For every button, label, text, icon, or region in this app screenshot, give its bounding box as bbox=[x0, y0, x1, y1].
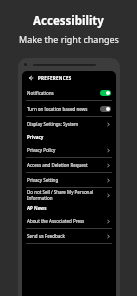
button[interactable]: Privacy Policy bbox=[22, 143, 116, 157]
other: Back bbox=[27, 74, 35, 82]
button[interactable]: Turn on location based news bbox=[22, 101, 116, 116]
staticText: Privacy bbox=[27, 134, 44, 140]
button[interactable]: Privacy Setting bbox=[22, 173, 116, 187]
button[interactable]: Back bbox=[22, 71, 116, 85]
button[interactable]: Send us Feedback bbox=[22, 229, 116, 243]
staticText: Privacy Setting bbox=[27, 177, 106, 183]
staticText: Privacy Policy bbox=[27, 147, 106, 153]
button[interactable]: Access and Deletion Request bbox=[22, 158, 116, 172]
staticText: Turn on location based news bbox=[27, 106, 100, 112]
staticText: Display Settings: System bbox=[27, 121, 106, 127]
staticText: Access and Deletion Request bbox=[27, 162, 106, 168]
staticText: Accessibility bbox=[33, 13, 104, 29]
button[interactable]: Do not Sell / Share My Personal Informat… bbox=[22, 188, 116, 202]
staticText: Send us Feedback bbox=[27, 233, 106, 239]
staticText: Notifications bbox=[27, 90, 100, 96]
staticText: About the Associated Press bbox=[27, 218, 106, 224]
button[interactable]: Display Settings: System bbox=[22, 117, 116, 131]
button[interactable]: Notifications bbox=[22, 85, 116, 100]
staticText: AP News bbox=[27, 205, 47, 211]
staticText: Do not Sell / Share My Personal Informat… bbox=[27, 189, 106, 201]
staticText: Make the right changes bbox=[19, 33, 119, 45]
button[interactable]: About the Associated Press bbox=[22, 214, 116, 228]
staticText: PREFERENCES bbox=[38, 75, 72, 81]
